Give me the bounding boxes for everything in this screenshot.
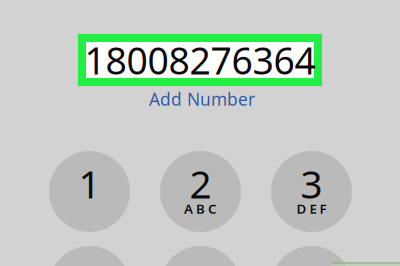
staticText: D E F [296, 200, 326, 217]
button[interactable]: 6 [271, 246, 352, 266]
button[interactable]: 5 [160, 246, 241, 266]
staticText: A B C [184, 200, 217, 217]
button[interactable]: Add Number [137, 89, 267, 109]
staticText: Add Number [149, 87, 255, 110]
staticText: 2 [189, 158, 211, 209]
staticText: 18008276364 [84, 35, 315, 85]
button[interactable]: 3 [271, 151, 352, 232]
staticText: 1 [78, 158, 100, 209]
button[interactable]: 2 [160, 151, 241, 232]
button[interactable]: 4 [49, 246, 130, 266]
button[interactable]: 1 [49, 151, 130, 232]
staticText: 3 [300, 158, 322, 209]
